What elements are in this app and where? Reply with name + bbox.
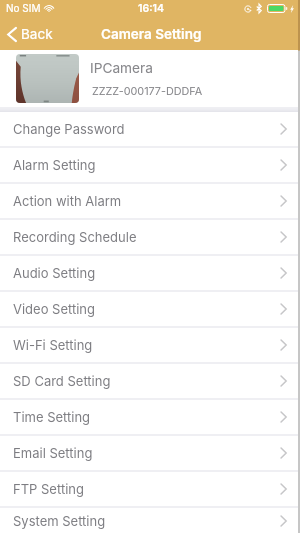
staticText: IPCamera	[90, 60, 153, 77]
button[interactable]: Action with Alarm	[0, 184, 300, 218]
staticText: SD Card Setting	[13, 373, 111, 389]
staticText: Alarm Setting	[13, 157, 96, 173]
staticText: System Setting	[13, 513, 106, 529]
button[interactable]: SD Card Setting	[0, 364, 300, 398]
staticText: No SIM	[6, 2, 41, 14]
button[interactable]: Recording Schedule	[0, 220, 300, 254]
button[interactable]: IPCamera	[0, 50, 300, 107]
staticText: Email Setting	[13, 445, 93, 461]
staticText: Change Password	[13, 121, 125, 137]
staticText: Video Setting	[13, 301, 96, 317]
button[interactable]: Email Setting	[0, 436, 300, 470]
button[interactable]: Change Password	[0, 112, 300, 146]
button[interactable]: Alarm Setting	[0, 148, 300, 182]
button[interactable]: Wi-Fi Setting	[0, 328, 300, 362]
staticText: Audio Setting	[13, 265, 96, 281]
staticText: Wi-Fi Setting	[13, 337, 93, 353]
staticText: Back	[21, 26, 53, 42]
button[interactable]: Audio Setting	[0, 256, 300, 290]
staticText: 16:14	[138, 2, 164, 15]
button[interactable]: Time Setting	[0, 400, 300, 434]
staticText: Camera Setting	[101, 26, 202, 42]
button[interactable]: Back	[0, 24, 61, 45]
button[interactable]: FTP Setting	[0, 472, 300, 506]
staticText: FTP Setting	[13, 481, 84, 497]
staticText: Time Setting	[13, 409, 91, 425]
staticText: Action with Alarm	[13, 193, 122, 209]
staticText: Recording Schedule	[13, 229, 137, 245]
staticText: ZZZZ-000177-DDDFA	[92, 85, 203, 98]
button[interactable]: Video Setting	[0, 292, 300, 326]
button[interactable]: System Setting	[0, 508, 300, 533]
